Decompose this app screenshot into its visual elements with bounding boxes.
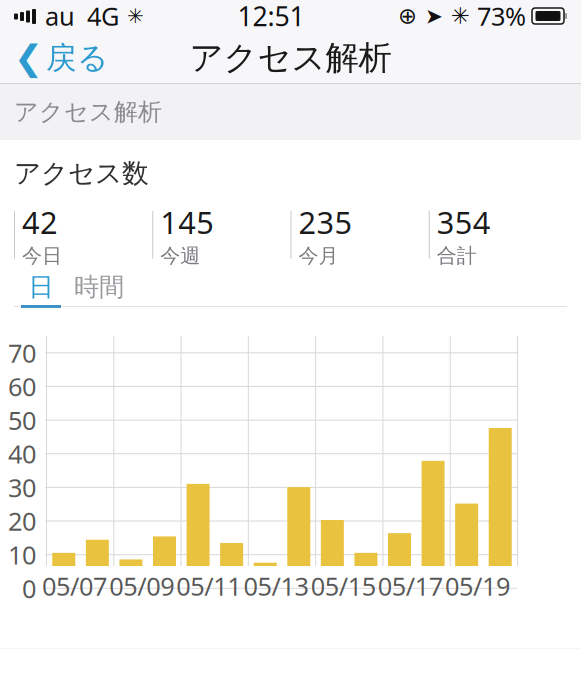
staticText: 今月 xyxy=(298,243,338,268)
staticText: 40 xyxy=(8,437,36,470)
staticText: 30 xyxy=(8,471,36,504)
staticText: 70 xyxy=(8,336,36,370)
staticText: 235 xyxy=(298,202,352,242)
staticText: 4G xyxy=(87,0,119,33)
staticText: 10 xyxy=(8,538,36,571)
staticText: 05/09 xyxy=(109,569,174,603)
staticText: 60 xyxy=(8,370,36,403)
staticText: ✳ xyxy=(451,3,470,29)
staticText: 日 xyxy=(28,271,53,302)
button[interactable]: 日 xyxy=(14,269,68,305)
staticText: 145 xyxy=(160,202,214,242)
staticText: 今日 xyxy=(22,243,62,268)
staticText: 20 xyxy=(8,504,36,538)
staticText: 05/19 xyxy=(445,569,510,603)
staticText: au xyxy=(45,0,75,33)
button[interactable]: 時間 xyxy=(68,269,130,305)
staticText: 時間 xyxy=(74,271,124,302)
staticText: アクセス解析 xyxy=(189,37,391,78)
staticText: ➤ xyxy=(425,4,443,28)
staticText: アクセス数 xyxy=(14,157,149,190)
staticText: 12:51 xyxy=(237,0,304,34)
staticText: 05/13 xyxy=(243,569,308,603)
button[interactable]: ❮ xyxy=(0,32,122,84)
staticText: 05/15 xyxy=(311,569,376,603)
staticText: 戻る xyxy=(46,39,108,77)
staticText: ❮ xyxy=(14,38,43,78)
staticText: 今週 xyxy=(160,243,200,268)
staticText: 73% xyxy=(477,0,526,33)
staticText: 05/07 xyxy=(42,569,107,603)
staticText: 0 xyxy=(22,571,36,605)
staticText: 05/11 xyxy=(176,569,241,603)
staticText: 合計 xyxy=(437,243,477,268)
staticText: 05/17 xyxy=(378,569,443,603)
staticText: アクセス解析 xyxy=(14,97,162,127)
staticText: ✳ xyxy=(127,5,144,27)
staticText: 50 xyxy=(8,403,36,437)
staticText: 42 xyxy=(22,202,58,242)
staticText: 354 xyxy=(437,202,491,242)
staticText: ⊕ xyxy=(398,3,417,29)
